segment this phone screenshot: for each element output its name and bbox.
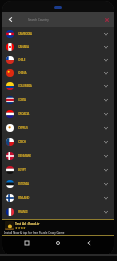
button[interactable]: CHINA (2, 66, 114, 79)
button[interactable]: Back (83, 237, 95, 249)
button[interactable]: Back (2, 12, 18, 27)
staticText: Install Now & tap for free Puzzle Crazy … (4, 231, 65, 235)
button[interactable]: CANADA (2, 40, 114, 53)
staticText: CHINA (18, 71, 27, 75)
staticText: CZECH (18, 140, 26, 144)
staticText: DENMARK (18, 154, 31, 158)
staticText: CYPRUS (18, 126, 28, 130)
button[interactable]: CYPRUS (2, 121, 114, 135)
button[interactable]: COLUMBIA (2, 79, 114, 93)
button[interactable]: Home (52, 237, 64, 249)
staticText: CROACIA (18, 112, 29, 116)
button[interactable]: COSTA (2, 93, 114, 107)
staticText: FINLAND (18, 196, 30, 200)
button[interactable]: Recent apps (21, 237, 33, 249)
staticText: CAMBODIA (18, 32, 32, 36)
button[interactable]: DENMARK (2, 149, 114, 163)
staticText: CHILE (18, 58, 25, 62)
staticText: EGYPT (18, 168, 26, 172)
button[interactable]: ESTONIA (2, 177, 114, 191)
staticText: Search Country (28, 18, 49, 22)
button[interactable]: CHILE (2, 53, 114, 66)
button[interactable]: Test Ad : Road-tr (2, 219, 114, 236)
button[interactable]: FINLAND (2, 191, 114, 205)
staticText: ESTONIA (18, 182, 29, 186)
staticText: COSTA (18, 98, 26, 102)
button[interactable]: FRANCE (2, 205, 114, 219)
button[interactable]: CZECH (2, 135, 114, 149)
button[interactable]: CAMBODIA (2, 27, 114, 40)
staticText: Test Ad : Road-tr (15, 222, 40, 226)
staticText: FRANCE (18, 210, 28, 214)
staticText: ★★★★ (15, 226, 26, 229)
staticText: CANADA (18, 45, 29, 49)
staticText: COLUMBIA (18, 84, 32, 88)
button[interactable]: CROACIA (2, 107, 114, 121)
button[interactable]: Clear search (102, 15, 111, 24)
button[interactable]: EGYPT (2, 163, 114, 177)
